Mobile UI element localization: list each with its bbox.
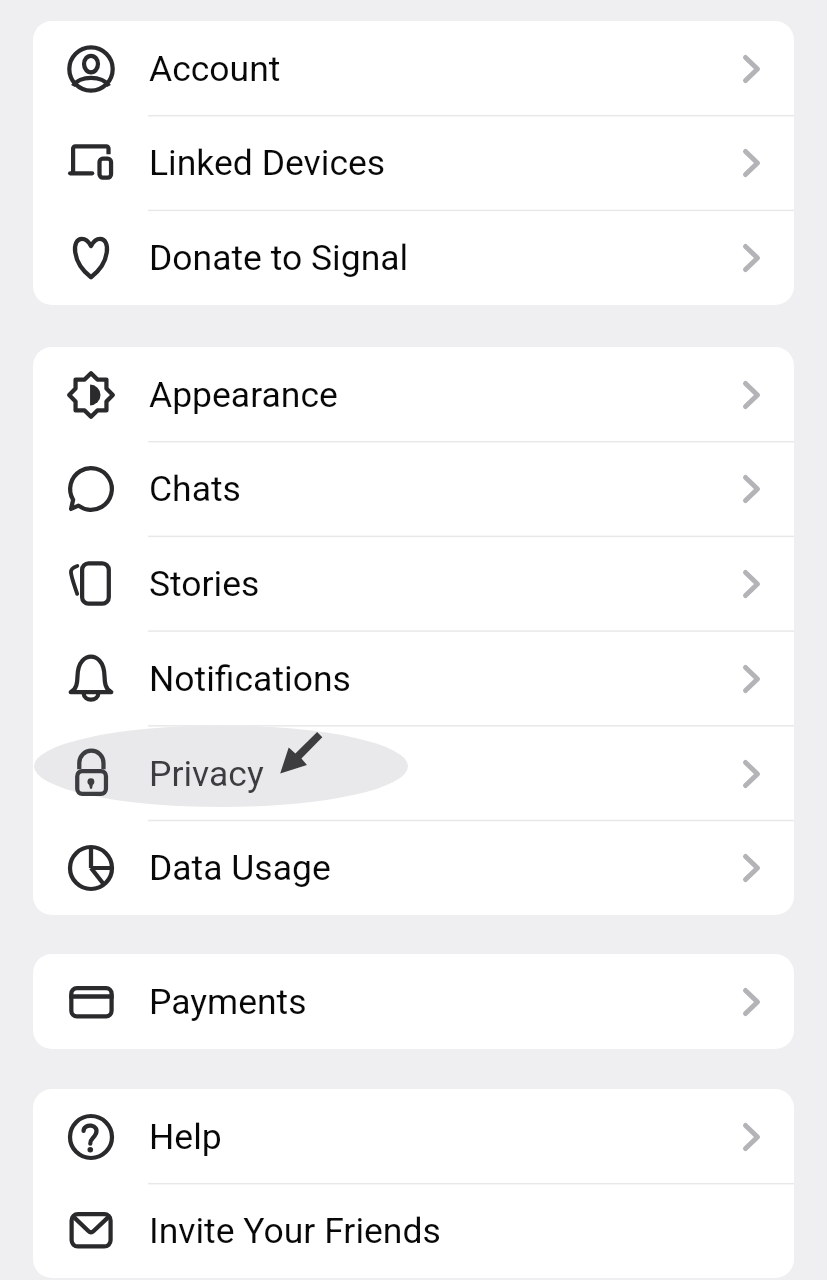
button[interactable]: Donate to Signal — [33, 210, 794, 305]
button[interactable]: Stories — [33, 536, 794, 631]
staticText: Payments — [149, 981, 307, 1023]
button[interactable]: Notifications — [33, 631, 794, 726]
other: Open Help — [730, 1115, 774, 1159]
staticText: Appearance — [149, 374, 338, 416]
staticText: Notifications — [149, 658, 351, 700]
other: Open Privacy — [730, 752, 774, 796]
staticText: Data Usage — [149, 847, 331, 889]
other: Open Donate to Signal — [730, 236, 774, 280]
other: Open Payments — [730, 980, 774, 1024]
other: Open Chats — [730, 467, 774, 511]
other: Open Stories — [730, 562, 774, 606]
button[interactable]: Data Usage — [33, 821, 794, 915]
button[interactable]: Account — [33, 21, 794, 116]
button[interactable]: Chats — [33, 442, 794, 536]
button[interactable]: Invite Your Friends — [33, 1184, 794, 1278]
staticText: Account — [149, 48, 281, 90]
button[interactable]: Appearance — [33, 347, 794, 442]
button[interactable]: Help — [33, 1089, 794, 1184]
staticText: Privacy — [149, 753, 264, 795]
staticText: Donate to Signal — [149, 237, 409, 279]
button[interactable]: Linked Devices — [33, 116, 794, 210]
other: Open Data Usage — [730, 846, 774, 890]
button[interactable]: Payments — [33, 954, 794, 1049]
staticText: Linked Devices — [149, 142, 386, 184]
other: Open Notifications — [730, 657, 774, 701]
other: Open Linked Devices — [730, 141, 774, 185]
other: Open Appearance — [730, 373, 774, 417]
other: Open Account — [730, 47, 774, 91]
button[interactable]: Privacy — [33, 726, 794, 821]
staticText: Stories — [149, 563, 260, 605]
staticText: Help — [149, 1116, 222, 1158]
staticText: Chats — [149, 468, 241, 510]
staticText: Invite Your Friends — [149, 1210, 441, 1252]
